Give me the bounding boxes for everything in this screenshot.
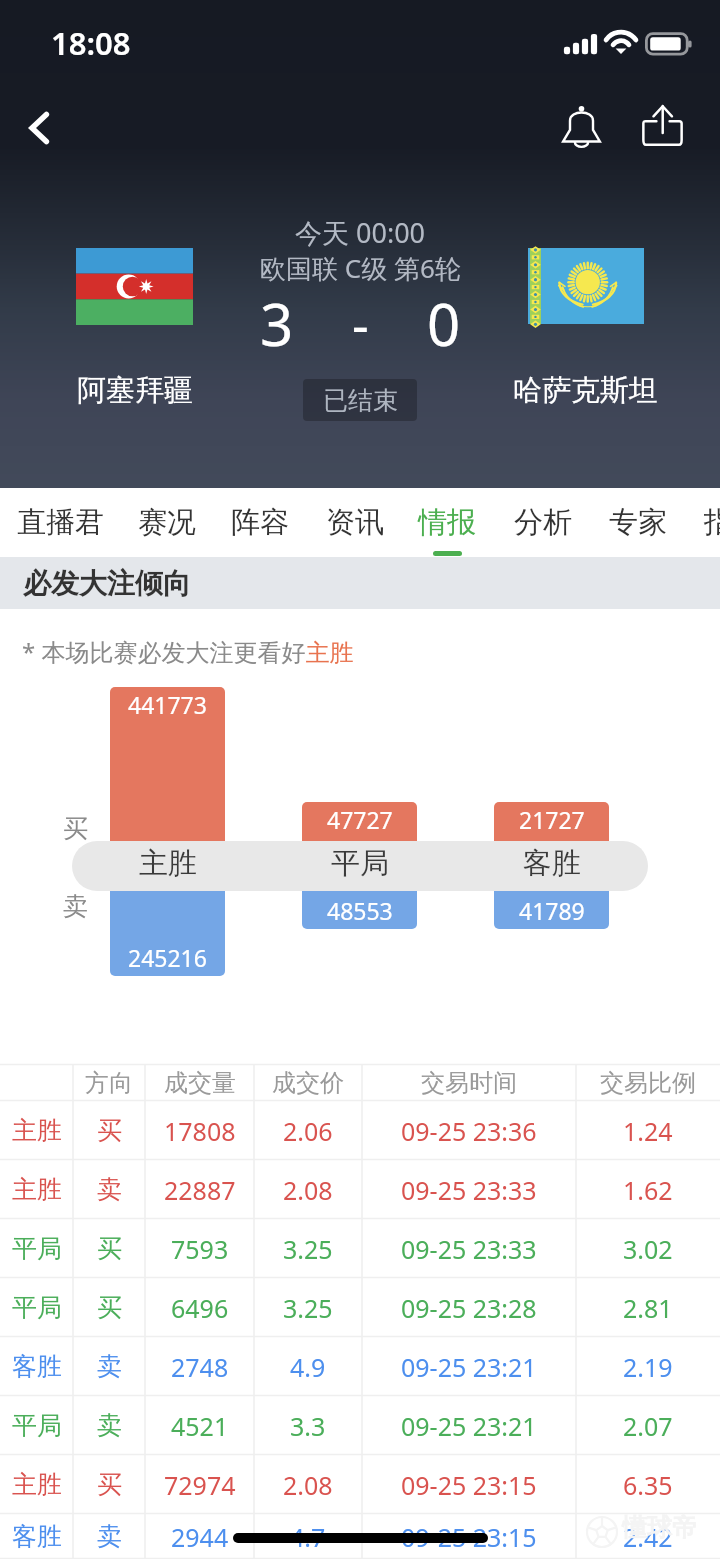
staticText: 41789 bbox=[519, 895, 585, 926]
staticText: 买 bbox=[63, 813, 88, 844]
staticText: 2.42 bbox=[623, 1520, 673, 1554]
staticText: 48553 bbox=[327, 895, 393, 926]
staticText: 主胜 bbox=[12, 1115, 62, 1146]
button[interactable]: Notifications bbox=[549, 94, 613, 158]
staticText: 平局 bbox=[12, 1292, 62, 1323]
staticText: 买 bbox=[97, 1292, 122, 1323]
staticText: 资讯 bbox=[326, 504, 384, 541]
staticText: 2.06 bbox=[283, 1114, 333, 1148]
button[interactable]: 平局 bbox=[0, 1396, 720, 1455]
button[interactable]: 21727 bbox=[494, 802, 609, 841]
staticText: 阵容 bbox=[231, 504, 289, 541]
button[interactable]: 资讯 bbox=[309, 488, 401, 557]
staticText: 3.3 bbox=[290, 1409, 326, 1443]
staticText: 441773 bbox=[128, 689, 207, 720]
staticText: 72974 bbox=[164, 1468, 236, 1502]
staticText: - bbox=[352, 288, 369, 359]
staticText: 欧国联 C级 第6轮 bbox=[260, 250, 461, 286]
staticText: 交易时间 bbox=[421, 1068, 517, 1098]
staticText: 赛况 bbox=[138, 504, 196, 541]
button[interactable]: 赛况 bbox=[121, 488, 213, 557]
button[interactable]: 47727 bbox=[302, 802, 417, 841]
staticText: 情报 bbox=[418, 504, 476, 541]
staticText: 4521 bbox=[171, 1409, 229, 1443]
staticText: 21727 bbox=[519, 804, 585, 835]
button[interactable]: 441773 bbox=[110, 687, 225, 841]
staticText: 2.08 bbox=[283, 1173, 333, 1207]
button[interactable]: Share bbox=[630, 94, 694, 158]
button[interactable]: 主胜 bbox=[0, 1160, 720, 1219]
staticText: 主胜 bbox=[139, 845, 197, 882]
staticText: 分析 bbox=[514, 504, 572, 541]
staticText: 2748 bbox=[171, 1350, 229, 1384]
staticText: 平局 bbox=[12, 1410, 62, 1441]
staticText: 1.24 bbox=[623, 1114, 673, 1148]
staticText: 卖 bbox=[97, 1521, 122, 1552]
staticText: 2.08 bbox=[283, 1468, 333, 1502]
staticText: 主胜 bbox=[12, 1174, 62, 1205]
staticText: 18:08 bbox=[51, 22, 131, 64]
staticText: 平局 bbox=[331, 845, 389, 882]
button[interactable]: 平局 bbox=[0, 1219, 720, 1278]
button[interactable]: 指数 bbox=[687, 488, 720, 557]
staticText: 17808 bbox=[164, 1114, 236, 1148]
button[interactable]: 41789 bbox=[494, 891, 609, 929]
staticText: 已结束 bbox=[323, 385, 398, 416]
staticText: 4.7 bbox=[290, 1520, 326, 1554]
staticText: 平局 bbox=[12, 1233, 62, 1264]
staticText: 6496 bbox=[171, 1291, 229, 1325]
button[interactable]: Back bbox=[8, 96, 72, 160]
staticText: 1.62 bbox=[623, 1173, 673, 1207]
button[interactable]: 245216 bbox=[110, 891, 225, 976]
button[interactable]: 客胜 bbox=[0, 1514, 720, 1559]
staticText: 专家 bbox=[609, 504, 667, 541]
staticText: 09-25 23:15 bbox=[401, 1468, 537, 1502]
staticText: 09-25 23:33 bbox=[401, 1173, 537, 1207]
staticText: 3.02 bbox=[623, 1232, 673, 1266]
staticText: 买 bbox=[97, 1469, 122, 1500]
staticText: 09-25 23:21 bbox=[401, 1409, 537, 1443]
staticText: 3 bbox=[260, 284, 294, 363]
staticText: 买 bbox=[97, 1115, 122, 1146]
button[interactable]: 主胜 bbox=[0, 1455, 720, 1514]
staticText: * 本场比赛必发大注更看好主胜 bbox=[22, 635, 354, 668]
staticText: 2.07 bbox=[623, 1409, 673, 1443]
staticText: 6.35 bbox=[623, 1468, 673, 1502]
staticText: 直播君 bbox=[17, 504, 104, 541]
button[interactable]: 平局 bbox=[0, 1278, 720, 1337]
staticText: 卖 bbox=[97, 1410, 122, 1441]
staticText: 47727 bbox=[327, 804, 393, 835]
staticText: 3.25 bbox=[283, 1291, 333, 1325]
staticText: 09-25 23:36 bbox=[401, 1114, 537, 1148]
button[interactable]: 分析 bbox=[497, 488, 589, 557]
button[interactable]: 主胜 bbox=[0, 1101, 720, 1160]
staticText: 客胜 bbox=[523, 845, 581, 882]
button[interactable]: 客胜 bbox=[0, 1337, 720, 1396]
staticText: 4.9 bbox=[290, 1350, 326, 1384]
staticText: 主胜 bbox=[12, 1469, 62, 1500]
staticText: 卖 bbox=[63, 891, 88, 922]
button[interactable]: 直播君 bbox=[0, 488, 122, 557]
staticText: 客胜 bbox=[12, 1521, 62, 1552]
button[interactable]: 阵容 bbox=[214, 488, 306, 557]
staticText: 懂球帝 bbox=[622, 1512, 697, 1543]
staticText: 哈萨克斯坦 bbox=[513, 372, 658, 409]
button[interactable]: 情报 bbox=[401, 488, 493, 557]
staticText: 7593 bbox=[171, 1232, 229, 1266]
staticText: 09-25 23:21 bbox=[401, 1350, 537, 1384]
staticText: 阿塞拜疆 bbox=[77, 372, 193, 409]
staticText: 客胜 bbox=[12, 1351, 62, 1382]
staticText: 卖 bbox=[97, 1351, 122, 1382]
staticText: 22887 bbox=[164, 1173, 236, 1207]
staticText: 3.25 bbox=[283, 1232, 333, 1266]
staticText: 必发大注倾向 bbox=[23, 566, 191, 601]
staticText: 2.19 bbox=[623, 1350, 673, 1384]
staticText: 0 bbox=[427, 284, 461, 363]
button[interactable]: 48553 bbox=[302, 891, 417, 929]
button[interactable]: 已结束 bbox=[303, 379, 417, 421]
button[interactable]: 专家 bbox=[592, 488, 684, 557]
staticText: 09-25 23:15 bbox=[401, 1520, 537, 1554]
staticText: 2.81 bbox=[623, 1291, 673, 1325]
staticText: 交易比例 bbox=[600, 1068, 696, 1098]
staticText: 指数 bbox=[704, 504, 720, 541]
